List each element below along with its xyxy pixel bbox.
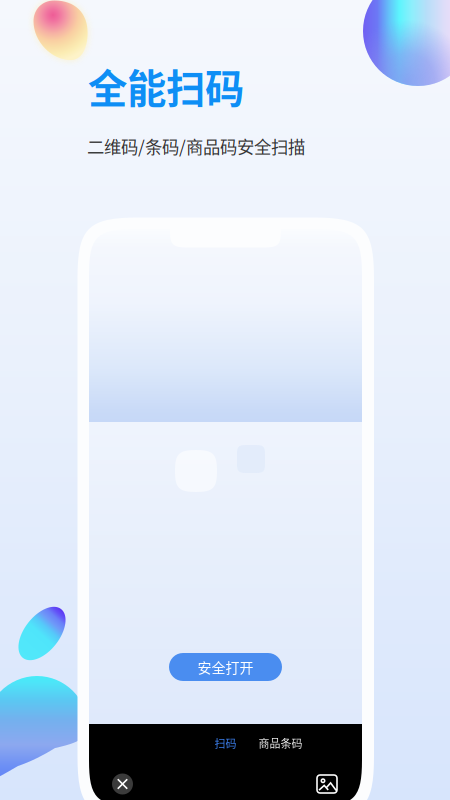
button[interactable]: 商品条码 bbox=[254, 734, 306, 752]
button[interactable]: 安全打开 bbox=[169, 653, 282, 681]
staticText: 扫码 bbox=[214, 735, 236, 751]
button[interactable]: Photo library bbox=[317, 775, 337, 793]
staticText: 全能扫码 bbox=[88, 57, 244, 114]
button[interactable]: 扫码 bbox=[209, 734, 241, 752]
staticText: 商品条码 bbox=[258, 735, 302, 751]
staticText: 二维码/条码/商品码安全扫描 bbox=[87, 133, 305, 159]
staticText: 安全打开 bbox=[197, 657, 253, 677]
button[interactable]: Close bbox=[112, 773, 133, 794]
